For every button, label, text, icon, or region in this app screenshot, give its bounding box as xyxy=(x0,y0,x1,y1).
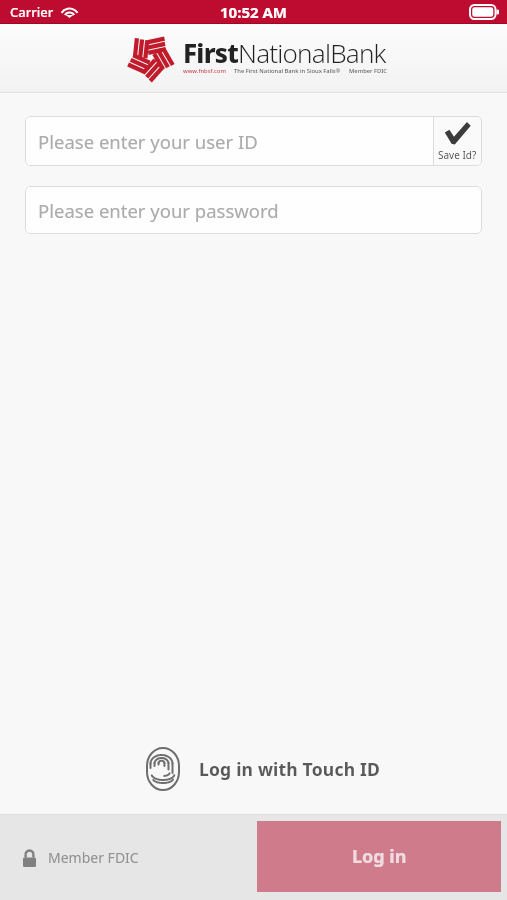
staticText: The First National Bank in Sioux Falls® xyxy=(234,67,341,75)
staticText: Log in xyxy=(352,844,407,869)
staticText: Carrier xyxy=(10,3,54,21)
staticText: Please enter your user ID xyxy=(38,129,258,154)
staticText: First xyxy=(183,35,238,70)
button[interactable]: Log in xyxy=(257,821,501,892)
staticText: NationalBank xyxy=(238,35,386,70)
staticText: 10:52 AM xyxy=(220,2,287,22)
button[interactable]: Save Id xyxy=(433,116,482,166)
staticText: Save Id? xyxy=(438,148,477,162)
staticText: Member FDIC xyxy=(349,67,388,75)
staticText: Log in with Touch ID xyxy=(199,757,380,781)
button[interactable]: Please enter your user ID xyxy=(25,116,482,166)
button[interactable]: Member FDIC xyxy=(0,848,139,867)
staticText: www.fnbsf.com xyxy=(183,67,226,75)
staticText: Please enter your password xyxy=(38,198,279,223)
staticText: Member FDIC xyxy=(48,848,139,867)
button[interactable]: Log in with Touch ID xyxy=(0,742,507,796)
button[interactable]: Please enter your password xyxy=(25,186,482,234)
